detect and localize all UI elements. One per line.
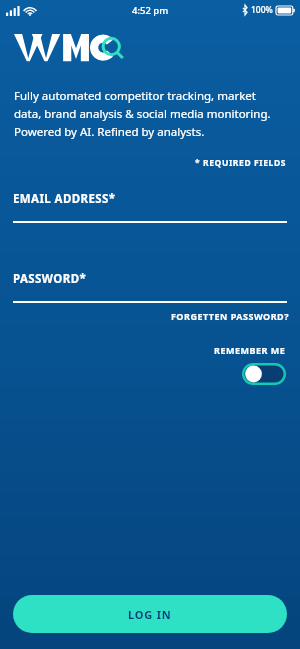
staticText: REMEMBER ME <box>214 344 286 356</box>
button[interactable]: LOG IN <box>13 595 287 633</box>
button[interactable]: PASSWORD* <box>13 271 287 303</box>
button[interactable]: FORGETTEN PASSWORD? <box>0 308 300 324</box>
staticText: PASSWORD* <box>13 271 87 287</box>
staticText: 4:52 pm <box>132 4 169 17</box>
staticText: * REQUIRED FIELDS <box>0 157 286 169</box>
staticText: LOG IN <box>128 607 172 622</box>
staticText: 100% <box>251 4 273 16</box>
button[interactable]: Remember me toggle <box>242 363 286 385</box>
other: WMC logo <box>14 30 106 70</box>
staticText: EMAIL ADDRESS* <box>13 191 116 207</box>
button[interactable]: EMAIL ADDRESS* <box>13 191 287 223</box>
staticText: Fully automated competitor tracking, mar… <box>14 88 282 139</box>
